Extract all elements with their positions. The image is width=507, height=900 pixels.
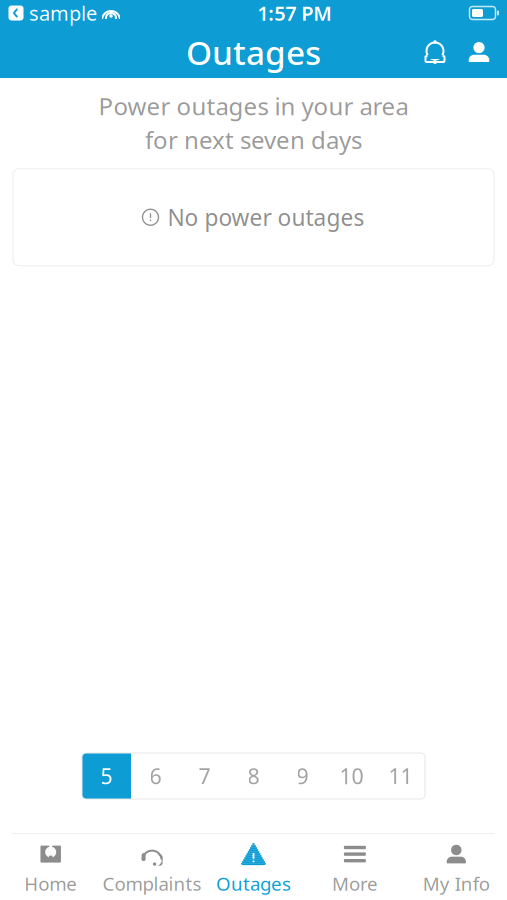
staticText: 9 [296,762,308,790]
button[interactable]: More [304,838,406,900]
button[interactable]: Account [457,27,501,77]
button[interactable]: Outages [203,838,304,900]
button[interactable]: 11 [376,753,425,799]
button[interactable]: 5 [82,753,131,799]
staticText: More [332,871,378,896]
button[interactable]: 7 [180,753,229,799]
staticText: My Info [423,871,490,896]
button[interactable]: Notifications [413,27,457,77]
staticText: 6 [149,762,161,790]
staticText: 5 [100,762,112,790]
staticText: Power outages in your area [98,90,408,122]
staticText: 1:57 PM [257,0,332,26]
staticText: 8 [247,762,259,790]
staticText: sample [29,0,97,26]
button[interactable]: 8 [229,753,278,799]
staticText: 11 [388,762,412,790]
button[interactable]: Complaints [101,838,203,900]
staticText: Complaints [103,871,202,896]
button[interactable]: 10 [327,753,376,799]
staticText: 7 [198,762,210,790]
staticText: for next seven days [145,124,362,156]
button[interactable]: 9 [278,753,327,799]
staticText: Outages [186,30,321,74]
staticText: No power outages [167,202,364,232]
staticText: Home [24,871,77,896]
staticText: Outages [216,871,291,896]
button[interactable]: 6 [131,753,180,799]
staticText: 10 [339,762,363,790]
button[interactable]: My Info [406,838,507,900]
button[interactable]: Home [0,838,101,900]
